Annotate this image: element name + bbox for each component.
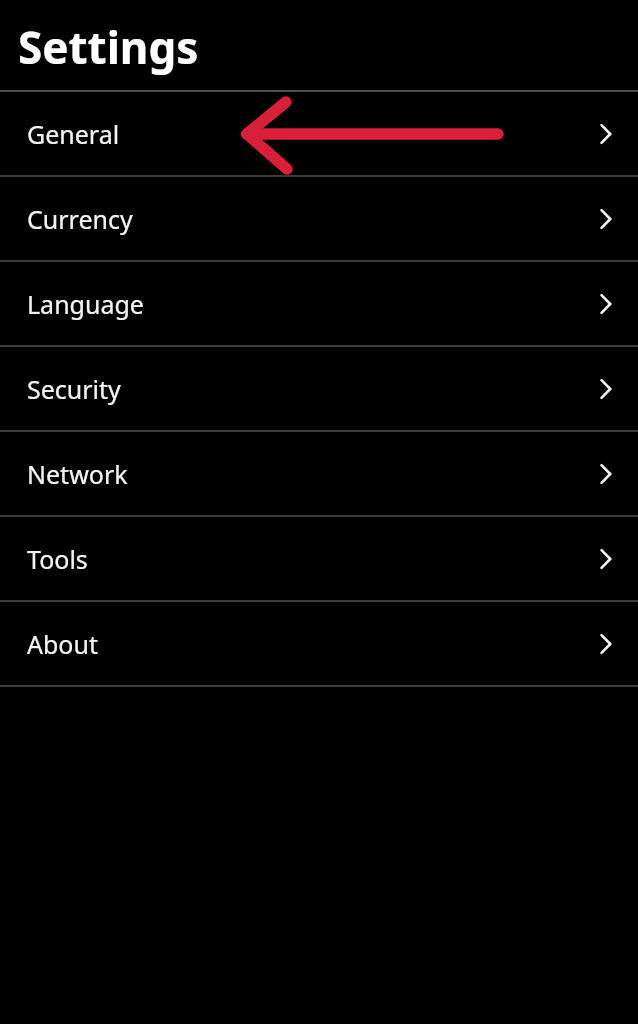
staticText: Currency [27,202,133,236]
button[interactable]: Tools [0,517,638,600]
staticText: Tools [27,542,88,576]
staticText: General [27,117,120,151]
button[interactable]: About [0,602,638,685]
staticText: Network [27,457,128,491]
button[interactable]: Language [0,262,638,345]
button[interactable]: Security [0,347,638,430]
staticText: About [27,627,98,661]
button[interactable]: Network [0,432,638,515]
staticText: Settings [18,17,199,77]
button[interactable]: General [0,92,638,175]
button[interactable]: Currency [0,177,638,260]
staticText: Security [27,372,121,406]
staticText: Language [27,287,144,321]
